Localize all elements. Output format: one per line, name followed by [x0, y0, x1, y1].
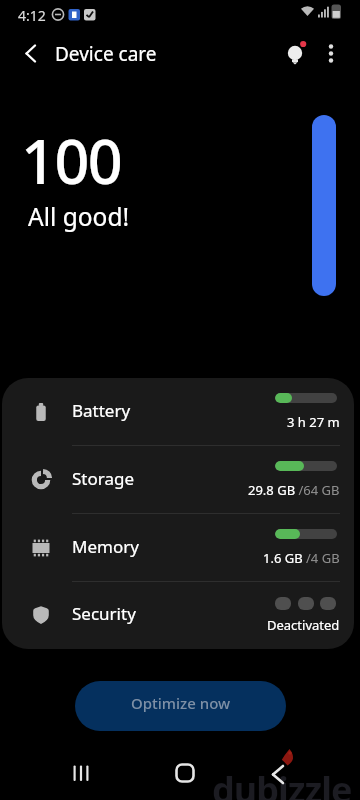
staticText: Security	[72, 602, 136, 625]
button[interactable]: Security	[2, 581, 354, 649]
button[interactable]: Battery	[2, 378, 354, 446]
staticText: 4:12	[18, 6, 46, 25]
button[interactable]: Storage	[2, 446, 354, 514]
button[interactable]	[57, 749, 105, 797]
staticText: 3 h 27 m	[287, 413, 340, 431]
button[interactable]	[255, 750, 303, 798]
button[interactable]: Memory	[2, 514, 354, 582]
staticText: Deactivated	[267, 616, 340, 634]
button[interactable]	[161, 749, 209, 797]
staticText: Optimize now	[131, 693, 231, 713]
staticText: 1.6 GB /4 GB	[263, 549, 340, 567]
button[interactable]: Optimize now	[75, 681, 286, 731]
button[interactable]	[314, 36, 350, 72]
staticText: dubizzle	[212, 765, 352, 800]
staticText: 29.8 GB /64 GB	[248, 481, 340, 499]
staticText: Device care	[55, 41, 157, 67]
staticText: Memory	[72, 535, 139, 558]
staticText: 100	[21, 119, 122, 202]
staticText: Storage	[72, 467, 135, 490]
button[interactable]	[277, 36, 313, 72]
staticText: Battery	[72, 399, 131, 422]
button[interactable]	[12, 35, 52, 71]
staticText: All good!	[28, 200, 130, 233]
